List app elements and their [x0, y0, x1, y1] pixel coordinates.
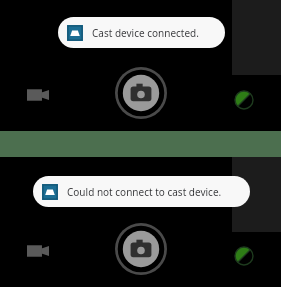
button[interactable]: Could not connect to cast device. — [33, 176, 250, 207]
button[interactable]: Cast device connected. — [58, 17, 225, 48]
staticText: Could not connect to cast device. — [67, 185, 222, 199]
button[interactable]: Filters — [233, 89, 255, 111]
staticText: Cast device connected. — [92, 26, 199, 40]
button[interactable]: Take photo — [115, 223, 167, 275]
button[interactable]: Filters — [233, 245, 255, 267]
button[interactable]: Take photo — [115, 67, 167, 119]
button[interactable]: Switch to video — [24, 237, 52, 265]
button[interactable]: Switch to video — [24, 81, 52, 109]
